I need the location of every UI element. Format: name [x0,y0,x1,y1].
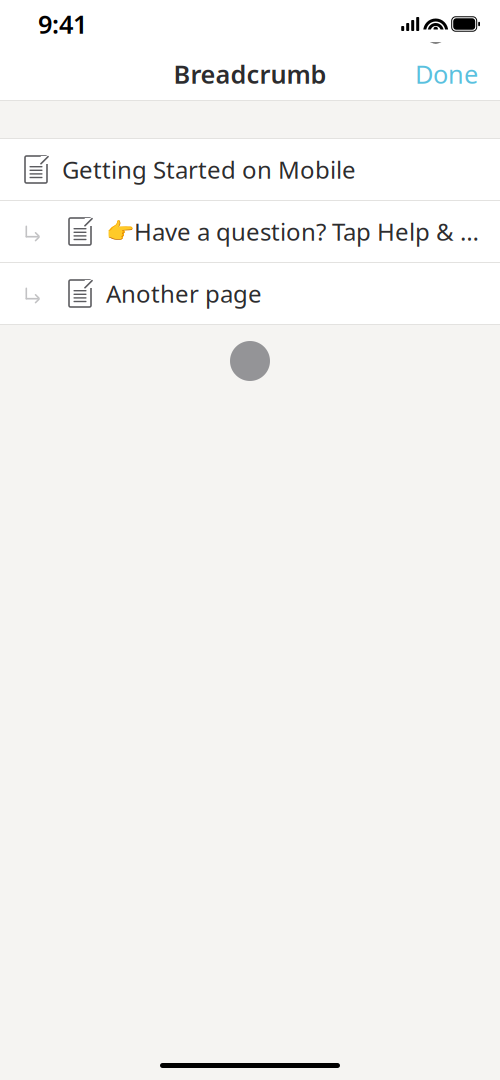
button[interactable]: 👉 [0,201,500,262]
staticText: 👉 [106,219,134,244]
button[interactable]: Another page [0,263,500,324]
staticText: Done [415,57,478,91]
button[interactable]: Getting Started on Mobile [0,139,500,200]
staticText: Have a question? Tap Help & fee… [134,216,484,247]
staticText: Another page [106,278,262,309]
staticText: Breadcrumb [173,57,326,91]
staticText: Getting Started on Mobile [62,154,356,185]
staticText: 9:41 [38,7,87,41]
button[interactable]: Done [401,49,492,99]
